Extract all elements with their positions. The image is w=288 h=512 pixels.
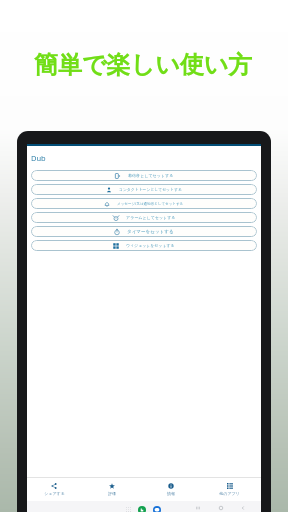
button[interactable]: タイマーをセットする bbox=[31, 226, 257, 237]
staticText: 他のアプリ bbox=[219, 491, 240, 496]
button[interactable]: メッセージ/又は通知音としてセットする bbox=[31, 198, 257, 209]
staticText: メッセージ/又は通知音としてセットする bbox=[117, 201, 184, 206]
other: Recents bbox=[195, 505, 201, 511]
staticText: コンタクトトーンとしてセットする bbox=[119, 187, 182, 192]
staticText: アラームとしてセットする bbox=[126, 215, 176, 220]
button[interactable]: 他のアプリ bbox=[200, 478, 259, 501]
staticText: 簡単で楽しい使い方 bbox=[34, 50, 253, 80]
other: Home bbox=[218, 505, 224, 511]
other: Back bbox=[240, 505, 246, 511]
button[interactable]: シェアする bbox=[25, 478, 83, 501]
staticText: 情報 bbox=[167, 491, 175, 496]
button[interactable]: コンタクトトーンとしてセットする bbox=[31, 184, 257, 195]
button[interactable]: 評価 bbox=[83, 478, 141, 501]
staticText: タイマーをセットする bbox=[127, 229, 174, 235]
button[interactable]: アラームとしてセットする bbox=[31, 212, 257, 223]
staticText: シェアする bbox=[44, 491, 65, 496]
button[interactable]: ウィジェットをセットする bbox=[31, 240, 257, 251]
staticText: Dub bbox=[31, 153, 46, 163]
staticText: 着信音としてセットする bbox=[128, 173, 174, 178]
button[interactable]: 情報 bbox=[141, 478, 200, 501]
button[interactable]: 着信音としてセットする bbox=[31, 170, 257, 181]
staticText: ウィジェットをセットする bbox=[126, 243, 175, 248]
staticText: 評価 bbox=[108, 491, 116, 496]
